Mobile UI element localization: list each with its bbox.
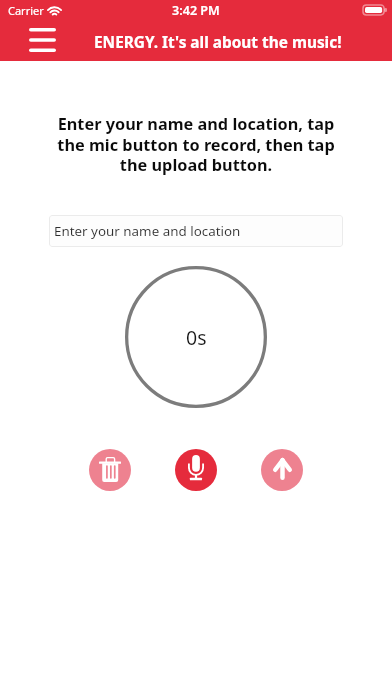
- button[interactable]: Upload: [261, 449, 303, 491]
- staticText: Enter your name and location, tap the mi…: [52, 113, 340, 175]
- button[interactable]: Enter your name and location: [49, 215, 343, 247]
- staticText: Carrier: [8, 3, 44, 18]
- button[interactable]: Delete recording: [89, 449, 131, 491]
- staticText: 0s: [186, 324, 207, 351]
- button[interactable]: Menu: [29, 19, 77, 60]
- button[interactable]: Record: [175, 449, 217, 491]
- staticText: Enter your name and location: [54, 222, 241, 240]
- staticText: 3:42 PM: [172, 2, 220, 19]
- staticText: ENERGY. It's all about the music!: [94, 32, 342, 53]
